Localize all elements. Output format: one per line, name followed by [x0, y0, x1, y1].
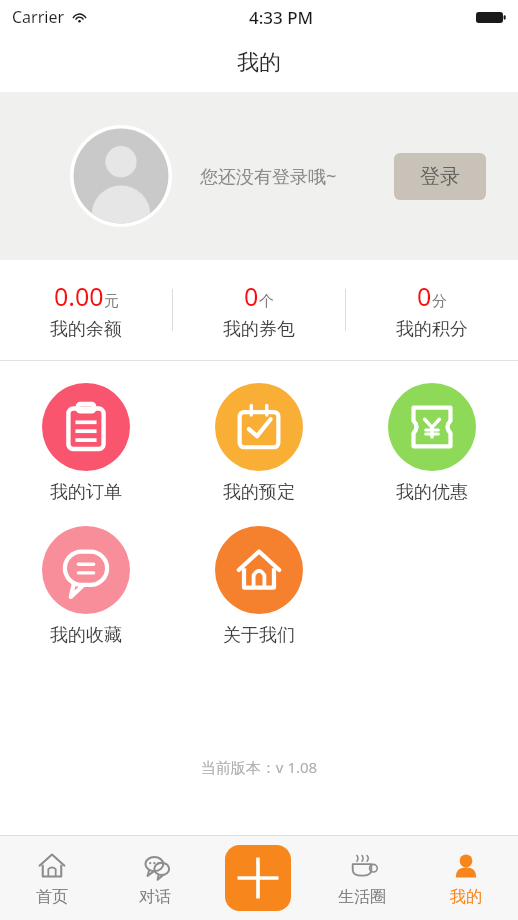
staticText: 0 [244, 279, 259, 313]
staticText: 我的收藏 [50, 624, 122, 647]
staticText: 0.00 [54, 279, 104, 313]
staticText: Carrier [12, 6, 65, 28]
button[interactable]: 我的订单 [0, 383, 172, 504]
staticText: 我的积分 [396, 318, 468, 341]
button[interactable]: 0 [346, 260, 518, 360]
button[interactable]: 关于我们 [172, 526, 345, 647]
staticText: 我的订单 [50, 481, 122, 504]
button[interactable]: 0 [173, 260, 345, 360]
staticText: 我的优惠 [396, 481, 468, 504]
staticText: 对话 [139, 887, 171, 907]
button[interactable]: 首页 [0, 836, 103, 920]
button[interactable]: 我的 [414, 836, 518, 920]
staticText: 我的券包 [223, 318, 295, 341]
staticText: 当前版本：v 1.08 [0, 757, 518, 777]
staticText: 登录 [420, 164, 460, 189]
button[interactable]: 我的预定 [172, 383, 345, 504]
staticText: 关于我们 [223, 624, 295, 647]
button[interactable]: 0.00 [0, 260, 172, 360]
staticText: 4:33 PM [249, 6, 314, 29]
button[interactable]: 对话 [103, 836, 206, 920]
button[interactable]: 登录 [394, 153, 486, 200]
staticText: 我的 [237, 49, 281, 77]
button[interactable]: 我的优惠 [345, 383, 518, 504]
staticText: 首页 [36, 887, 68, 907]
other: Avatar [70, 125, 172, 227]
button[interactable]: Add [206, 836, 310, 920]
staticText: 元 [104, 292, 119, 311]
staticText: 个 [259, 292, 274, 311]
staticText: 我的 [450, 887, 482, 907]
staticText: 我的余额 [50, 318, 122, 341]
staticText: 生活圈 [338, 887, 386, 907]
staticText: 您还没有登录哦~ [200, 164, 337, 189]
button[interactable]: 生活圈 [310, 836, 414, 920]
button[interactable]: 我的收藏 [0, 526, 172, 647]
staticText: 分 [432, 292, 447, 311]
staticText: 0 [417, 279, 432, 313]
staticText: 我的预定 [223, 481, 295, 504]
